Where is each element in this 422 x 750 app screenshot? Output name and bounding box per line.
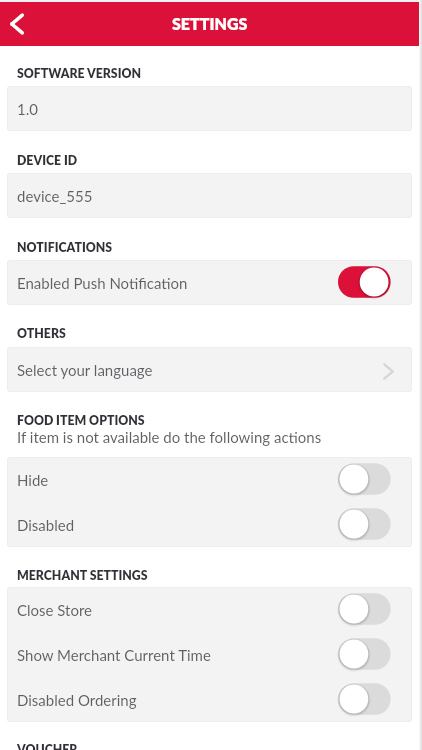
staticText: NOTIFICATIONS [17, 240, 113, 255]
button[interactable]: Close Store [7, 587, 412, 632]
staticText: If item is not available do the followin… [17, 428, 322, 446]
button[interactable]: Switch on [338, 266, 391, 298]
staticText: MERCHANT SETTINGS [17, 568, 148, 583]
staticText: DEVICE ID [17, 153, 78, 168]
staticText: Select your language [17, 361, 153, 379]
button[interactable]: Select your language [7, 347, 412, 392]
staticText: SETTINGS [172, 14, 248, 33]
button[interactable]: 1.0 [7, 86, 412, 131]
button[interactable]: Switch off [338, 463, 391, 495]
staticText: Disabled Ordering [17, 691, 137, 709]
staticText: OTHERS [17, 326, 66, 341]
staticText: SOFTWARE VERSION [17, 66, 142, 81]
button[interactable]: device_555 [7, 173, 412, 218]
staticText: VOUCHER [17, 742, 78, 750]
staticText: 1.0 [17, 100, 38, 118]
button[interactable]: Switch off [338, 508, 391, 540]
button[interactable]: Hide [7, 457, 412, 502]
button[interactable]: Switch off [338, 593, 391, 625]
staticText: Hide [17, 471, 49, 489]
button[interactable]: Switch off [338, 683, 391, 715]
staticText: Close Store [17, 601, 93, 619]
staticText: Enabled Push Notification [17, 274, 188, 292]
button[interactable]: Show Merchant Current Time [7, 632, 412, 677]
staticText: device_555 [17, 187, 93, 205]
button[interactable]: Back [0, 2, 44, 46]
staticText: FOOD ITEM OPTIONS [17, 413, 145, 428]
staticText: Show Merchant Current Time [17, 646, 211, 664]
staticText: Disabled [17, 516, 75, 534]
button[interactable]: Switch off [338, 638, 391, 670]
button[interactable]: Enabled Push Notification [7, 260, 412, 305]
button[interactable]: Disabled [7, 502, 412, 547]
button[interactable]: Disabled Ordering [7, 677, 412, 722]
